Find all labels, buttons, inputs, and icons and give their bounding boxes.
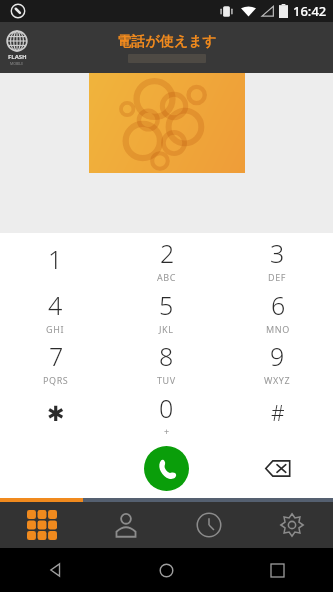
button[interactable]: Back	[0, 548, 111, 592]
button[interactable]: Recents	[222, 548, 333, 592]
button[interactable]: Contacts	[84, 502, 167, 548]
staticText: 2	[160, 236, 175, 270]
staticText: 3	[270, 236, 285, 270]
staticText: 電話が使えます	[117, 33, 217, 51]
staticText: FLASH	[8, 53, 27, 61]
button[interactable]: #	[222, 388, 333, 439]
button[interactable]: Call	[144, 446, 189, 491]
button[interactable]: 3	[222, 233, 333, 285]
staticText: PQRS	[43, 374, 69, 386]
button[interactable]	[89, 73, 245, 173]
staticText: 7	[49, 339, 64, 373]
staticText: 5	[159, 288, 174, 322]
staticText: 0	[159, 391, 174, 425]
staticText: TUV	[157, 374, 176, 386]
staticText: 8	[159, 339, 174, 373]
staticText: ABC	[157, 271, 177, 283]
staticText: 1	[48, 242, 63, 276]
staticText: MNO	[266, 323, 290, 335]
staticText: 9	[270, 339, 285, 373]
staticText: WXYZ	[264, 374, 291, 386]
staticText: +	[164, 425, 170, 437]
staticText: 6	[271, 288, 286, 322]
staticText: 16:42	[293, 2, 327, 20]
button[interactable]: 8	[111, 337, 222, 388]
staticText: #	[271, 399, 285, 428]
button[interactable]: Backspace	[222, 439, 333, 498]
staticText: DEF	[268, 271, 287, 283]
button[interactable]: ✱	[0, 388, 111, 439]
button[interactable]: 2	[111, 233, 222, 285]
button[interactable]: Recents	[167, 502, 250, 548]
button[interactable]: 7	[0, 337, 111, 388]
staticText: GHI	[46, 323, 65, 335]
button[interactable]: 0	[111, 388, 222, 439]
button[interactable]: 6	[222, 285, 333, 337]
button[interactable]: 4	[0, 285, 111, 337]
button[interactable]: Home	[111, 548, 222, 592]
staticText: ✱	[47, 402, 65, 426]
staticText: JKL	[159, 323, 174, 335]
staticText: MOBILE	[10, 61, 24, 66]
button[interactable]: 9	[222, 337, 333, 388]
staticText: 4	[48, 288, 63, 322]
button[interactable]: 5	[111, 285, 222, 337]
button[interactable]: Settings	[250, 502, 333, 548]
button[interactable]: Dialpad	[0, 502, 84, 548]
button[interactable]: 1	[0, 233, 111, 285]
